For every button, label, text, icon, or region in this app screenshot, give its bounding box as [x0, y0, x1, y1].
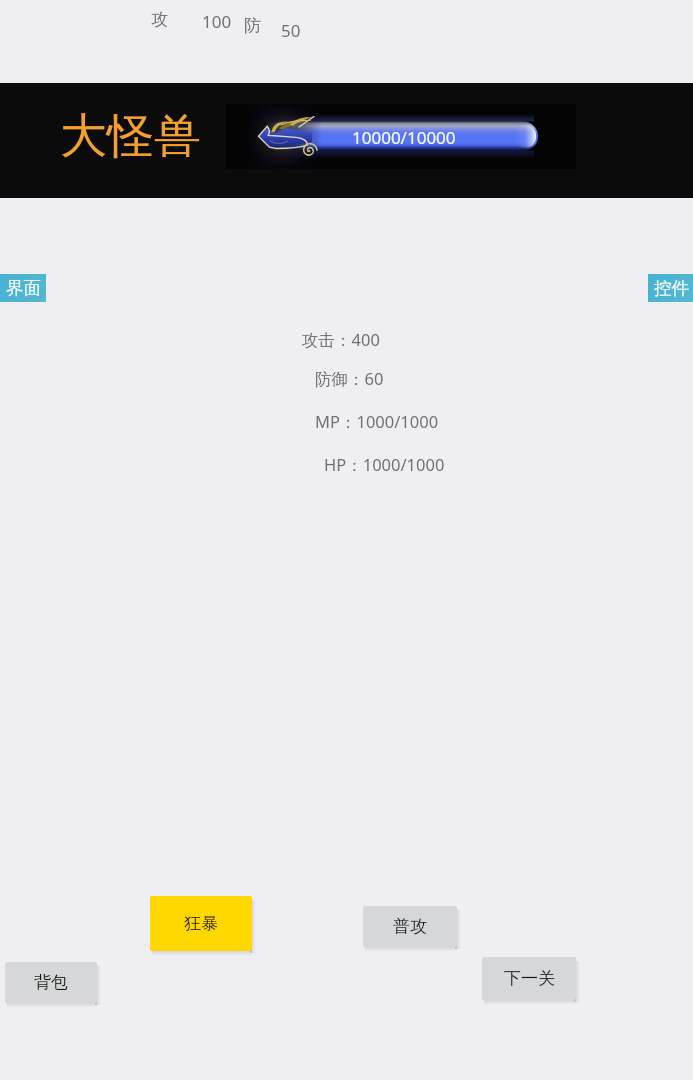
staticText: 普攻: [393, 916, 427, 937]
staticText: 攻: [151, 9, 168, 30]
button[interactable]: 控件: [648, 274, 693, 302]
button[interactable]: 背包: [5, 962, 97, 1003]
staticText: 100: [202, 10, 232, 33]
staticText: MP：1000/1000: [315, 410, 439, 433]
staticText: HP：1000/1000: [324, 453, 445, 476]
staticText: 防御：60: [315, 367, 384, 390]
button[interactable]: 界面: [0, 274, 46, 302]
staticText: 界面: [6, 277, 41, 299]
staticText: 大怪兽: [60, 107, 201, 166]
staticText: 攻击：400: [302, 328, 380, 351]
staticText: 50: [281, 19, 301, 42]
button[interactable]: 普攻: [363, 906, 457, 947]
staticText: 控件: [654, 277, 689, 299]
staticText: 防: [244, 15, 261, 36]
staticText: 背包: [34, 972, 68, 993]
staticText: 下一关: [504, 968, 555, 989]
button[interactable]: 狂暴: [150, 896, 252, 951]
button[interactable]: 下一关: [482, 957, 576, 1000]
staticText: 10000/10000: [352, 126, 456, 149]
staticText: 狂暴: [184, 913, 218, 934]
